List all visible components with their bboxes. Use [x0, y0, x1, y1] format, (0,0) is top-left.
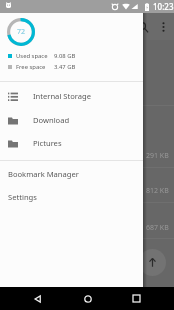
staticText: 10:23	[153, 1, 174, 12]
button[interactable]: Home	[76, 287, 99, 310]
staticText: 812 KB	[146, 186, 169, 196]
button[interactable]: Pictures	[0, 131, 143, 155]
button[interactable]: Download	[0, 108, 143, 132]
button[interactable]: More options	[152, 16, 174, 38]
staticText: Used space	[16, 52, 48, 60]
staticText: 9.08 GB	[54, 52, 76, 60]
button[interactable]: Bookmark Manager	[0, 162, 143, 185]
button[interactable]: Back	[26, 287, 49, 310]
staticText: Download	[33, 115, 70, 125]
button[interactable]: Internal Storage	[0, 84, 143, 108]
staticText: Pictures	[33, 138, 62, 148]
button[interactable]: Settings	[0, 185, 143, 208]
staticText: 291 KB	[146, 151, 169, 161]
button[interactable]: Recents	[125, 287, 148, 310]
staticText: 3.47 GB	[54, 63, 76, 71]
staticText: Settings	[8, 192, 37, 202]
staticText: Free space	[16, 63, 46, 71]
staticText: Internal Storage	[33, 91, 92, 101]
staticText: Bookmark Manager	[8, 169, 79, 179]
staticText: 72	[17, 27, 26, 37]
button[interactable]: Scroll to top	[139, 249, 166, 276]
button[interactable]: Search	[132, 16, 154, 38]
staticText: 687 KB	[146, 223, 169, 233]
